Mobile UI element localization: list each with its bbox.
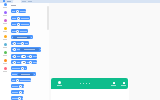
button[interactable] bbox=[0, 11, 10, 19]
button[interactable] bbox=[11, 72, 36, 76]
button[interactable] bbox=[11, 60, 37, 64]
button[interactable] bbox=[11, 84, 24, 88]
button[interactable] bbox=[11, 54, 37, 59]
button[interactable] bbox=[0, 67, 10, 75]
button[interactable]: Close bbox=[118, 78, 128, 89]
button[interactable] bbox=[11, 47, 41, 52]
button[interactable] bbox=[11, 16, 30, 20]
button[interactable] bbox=[11, 66, 27, 70]
button[interactable] bbox=[0, 59, 10, 67]
button[interactable] bbox=[11, 41, 29, 45]
button[interactable] bbox=[0, 3, 10, 11]
button[interactable] bbox=[11, 90, 24, 94]
button[interactable] bbox=[0, 43, 10, 51]
button[interactable] bbox=[11, 78, 31, 82]
button[interactable] bbox=[11, 29, 28, 33]
button[interactable] bbox=[11, 35, 33, 39]
button[interactable] bbox=[11, 22, 30, 26]
button[interactable] bbox=[0, 27, 10, 35]
button[interactable]: Add bbox=[108, 78, 118, 89]
button[interactable] bbox=[11, 96, 23, 100]
button[interactable]: Record bbox=[53, 78, 65, 89]
button[interactable] bbox=[11, 9, 26, 13]
button[interactable] bbox=[0, 19, 10, 27]
button[interactable] bbox=[0, 35, 10, 43]
button[interactable] bbox=[0, 51, 10, 59]
